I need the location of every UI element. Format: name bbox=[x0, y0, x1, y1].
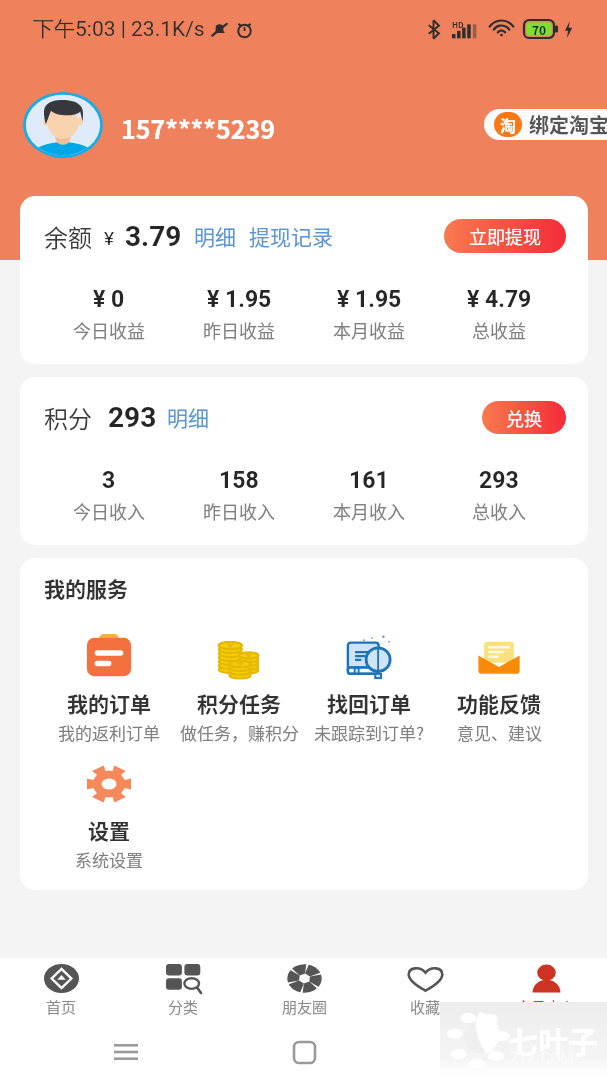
button[interactable]: ¥ 1.95 bbox=[174, 286, 304, 343]
staticText: 意见、建议 bbox=[457, 720, 542, 745]
staticText: 总收入 bbox=[472, 498, 526, 524]
button[interactable]: 293 bbox=[434, 467, 564, 524]
button[interactable]: ¥ 4.79 bbox=[434, 286, 564, 343]
button[interactable]: 分类 bbox=[122, 964, 244, 1018]
staticText: 70 bbox=[532, 21, 547, 38]
staticText: 3.79 bbox=[125, 220, 182, 253]
button[interactable]: 积分任务 bbox=[174, 633, 304, 745]
button[interactable]: 提现记录 bbox=[249, 221, 333, 251]
staticText: 绑定淘宝 bbox=[529, 110, 607, 139]
staticText: 我的订单 bbox=[67, 688, 151, 718]
button[interactable]: 兑换 bbox=[482, 401, 566, 434]
staticText: 淘 bbox=[500, 113, 517, 136]
staticText: 未跟踪到订单? bbox=[314, 720, 425, 745]
button[interactable]: 3 bbox=[44, 467, 174, 524]
staticText: ¥ bbox=[104, 227, 114, 249]
staticText: ¥ 0 bbox=[93, 286, 125, 313]
staticText: 积分 bbox=[44, 400, 92, 435]
staticText: 3 bbox=[102, 467, 116, 494]
staticText: 今日收益 bbox=[73, 317, 145, 343]
staticText: 今日收入 bbox=[73, 498, 145, 524]
button[interactable]: Home bbox=[287, 1035, 321, 1069]
staticText: 下午5:03 | 23.1K/s bbox=[33, 16, 205, 42]
staticText: ¥ 1.95 bbox=[337, 286, 402, 313]
button[interactable]: 收藏 bbox=[365, 964, 486, 1018]
staticText: 找回订单 bbox=[327, 688, 411, 718]
staticText: 立即提现 bbox=[469, 223, 541, 249]
staticText: ¥ 1.95 bbox=[207, 286, 272, 313]
staticText: 做任务，赚积分 bbox=[180, 720, 299, 745]
button[interactable]: 功能反馈 bbox=[434, 633, 564, 745]
staticText: 昨日收益 bbox=[203, 317, 275, 343]
staticText: 朋友圈 bbox=[282, 996, 328, 1018]
staticText: 积分任务 bbox=[197, 688, 281, 718]
staticText: 兑换 bbox=[506, 405, 542, 431]
button[interactable]: 淘 bbox=[484, 109, 607, 140]
button[interactable]: 161 bbox=[304, 467, 434, 524]
staticText: 七叶子 bbox=[508, 1018, 598, 1061]
button[interactable]: Recent apps bbox=[109, 1035, 143, 1069]
staticText: 161 bbox=[349, 467, 389, 494]
staticText: HD bbox=[452, 19, 464, 31]
button[interactable]: Back bbox=[465, 1035, 499, 1069]
button[interactable]: 设置 bbox=[44, 760, 174, 872]
staticText: 分类 bbox=[168, 996, 199, 1018]
staticText: 系统设置 bbox=[75, 847, 143, 872]
staticText: 158 bbox=[219, 467, 259, 494]
button[interactable]: 158 bbox=[174, 467, 304, 524]
staticText: 我的返利订单 bbox=[58, 720, 160, 745]
staticText: 本月收入 bbox=[333, 498, 405, 524]
button[interactable]: 立即提现 bbox=[444, 219, 566, 253]
staticText: 本月收益 bbox=[333, 317, 405, 343]
staticText: ¥ 4.79 bbox=[467, 286, 532, 313]
button[interactable]: 明细 bbox=[167, 402, 209, 432]
staticText: 我的服务 bbox=[44, 573, 128, 603]
staticText: 157****5239 bbox=[121, 110, 275, 146]
button[interactable]: 朋友圈 bbox=[244, 964, 365, 1018]
staticText: 功能反馈 bbox=[457, 688, 541, 718]
button[interactable]: 明细 bbox=[194, 221, 236, 251]
staticText: 总收益 bbox=[472, 317, 526, 343]
staticText: 收藏 bbox=[410, 996, 441, 1018]
staticText: 设置 bbox=[88, 815, 130, 845]
button[interactable]: ¥ 1.95 bbox=[304, 286, 434, 343]
staticText: 昨日收入 bbox=[203, 498, 275, 524]
staticText: 首页 bbox=[46, 996, 77, 1018]
button[interactable]: 首页 bbox=[0, 964, 122, 1018]
button[interactable]: 找回订单 bbox=[304, 633, 434, 745]
staticText: 7YZ.COM bbox=[510, 1049, 574, 1067]
staticText: 293 bbox=[479, 467, 519, 494]
button[interactable]: 会员中心 bbox=[486, 964, 607, 1018]
button[interactable]: ¥ 0 bbox=[44, 286, 174, 343]
button[interactable]: 我的订单 bbox=[44, 633, 174, 745]
staticText: 293 bbox=[108, 401, 157, 434]
staticText: 会员中心 bbox=[516, 996, 577, 1018]
staticText: 余额 bbox=[44, 219, 92, 254]
